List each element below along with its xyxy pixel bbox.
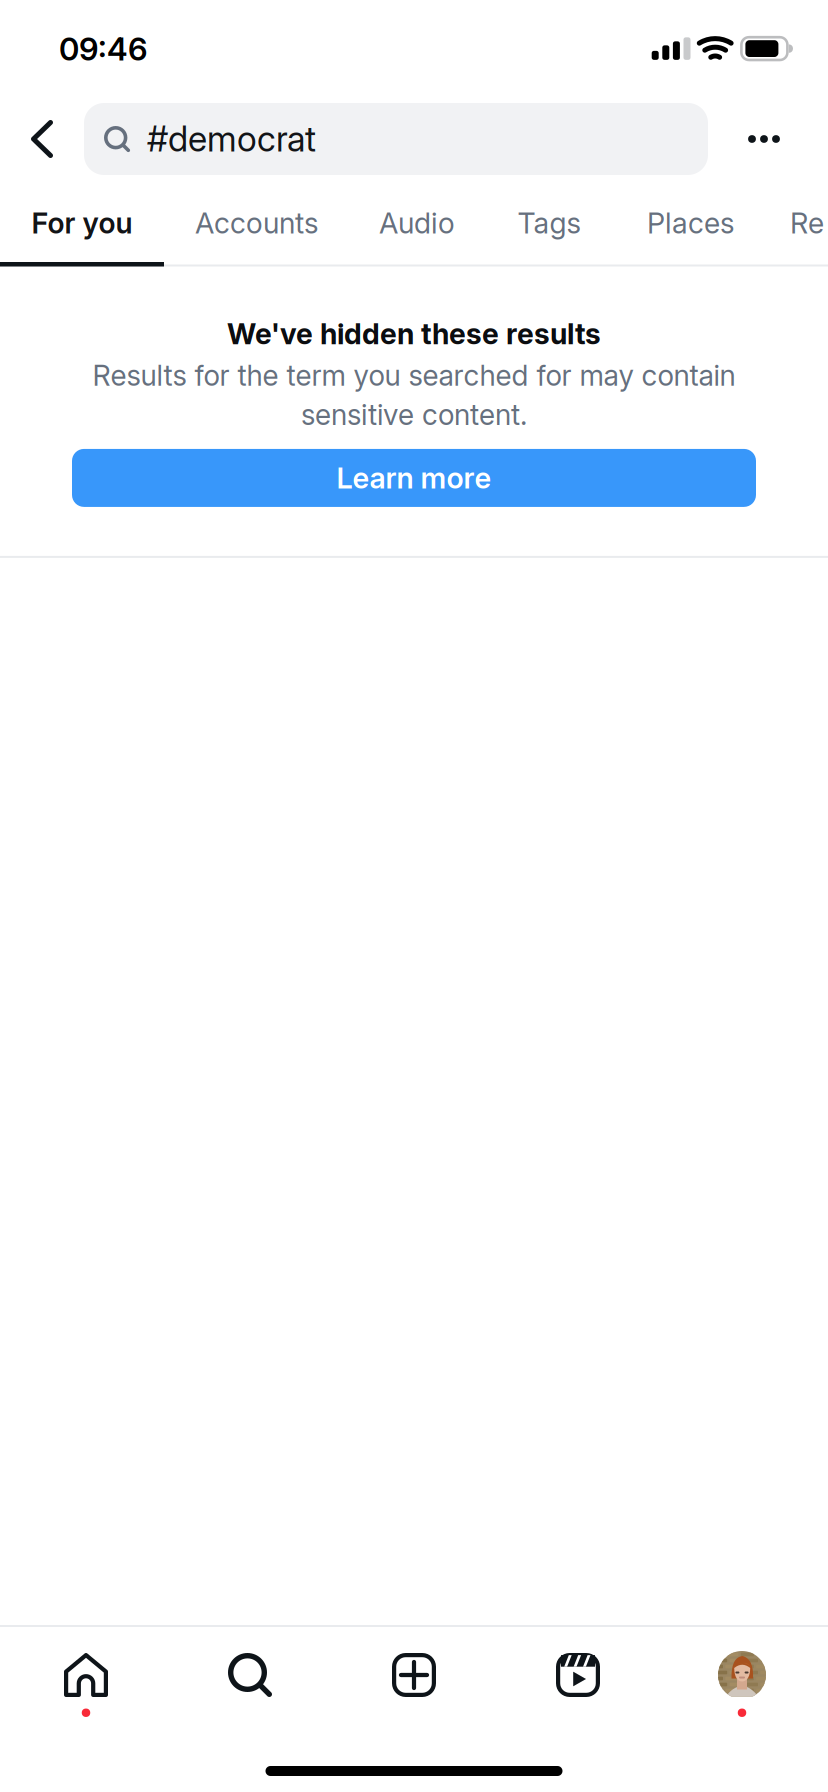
button[interactable]: Home	[4, 1625, 168, 1722]
button[interactable]: Search	[168, 1625, 332, 1722]
button[interactable]: Create	[332, 1625, 496, 1722]
button[interactable]: Back	[0, 94, 84, 184]
button[interactable]: Learn more	[72, 449, 756, 507]
staticText: Re	[790, 206, 824, 240]
button[interactable]: Reels	[496, 1625, 660, 1722]
button[interactable]: Audio	[350, 184, 484, 266]
button[interactable]: Profile	[660, 1625, 824, 1722]
staticText: sensitive content.	[301, 397, 527, 432]
staticText: Learn more	[336, 460, 491, 495]
staticText: Tags	[517, 206, 581, 240]
staticText: #democrat	[147, 118, 316, 160]
staticText: Places	[647, 206, 735, 240]
button[interactable]: For you	[0, 184, 164, 266]
staticText: Results for the term you searched for ma…	[92, 358, 735, 393]
button[interactable]: Tags	[484, 184, 615, 266]
staticText: We've hidden these results	[227, 316, 601, 351]
button[interactable]: #democrat	[84, 103, 708, 175]
button[interactable]: Re	[767, 184, 828, 266]
button[interactable]: More options	[716, 94, 812, 184]
button[interactable]: Accounts	[164, 184, 350, 266]
staticText: 09:46	[59, 30, 147, 68]
button[interactable]: Places	[615, 184, 767, 266]
staticText: Audio	[379, 206, 455, 240]
staticText: For you	[31, 206, 132, 240]
staticText: Accounts	[195, 206, 319, 240]
